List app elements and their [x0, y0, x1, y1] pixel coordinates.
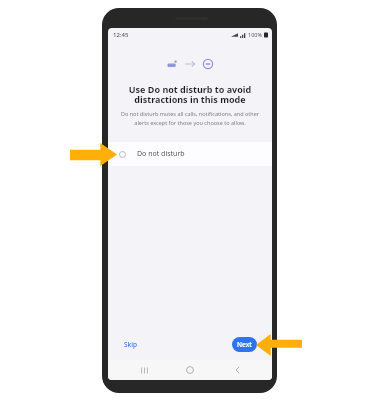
button[interactable]: Recent apps [133, 360, 155, 380]
staticText: Do not disturb [137, 149, 185, 159]
staticText: 12:45 [113, 31, 129, 39]
button[interactable]: Home [179, 360, 201, 380]
button[interactable]: Do not disturb [108, 142, 272, 166]
staticText: Do not disturb mutes all calls, notifica… [113, 110, 267, 127]
other: Pointer arrow [70, 143, 117, 166]
button[interactable]: Next [232, 337, 257, 352]
other: Pointer arrow [256, 334, 302, 356]
staticText: Next [237, 340, 252, 349]
staticText: Use Do not disturb to avoid distractions… [108, 83, 272, 105]
staticText: Skip [124, 340, 137, 349]
button[interactable]: Skip [121, 337, 140, 352]
staticText: 100% [248, 31, 263, 38]
button[interactable]: Back [226, 360, 248, 380]
